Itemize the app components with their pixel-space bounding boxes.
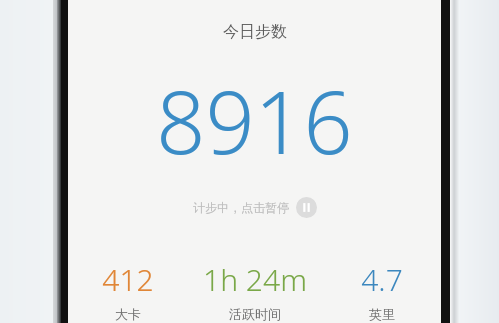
staticText: 412 bbox=[102, 259, 154, 300]
button[interactable]: Pause step counting bbox=[187, 195, 323, 220]
staticText: 活跃时间 bbox=[229, 306, 281, 321]
button[interactable]: Pause bbox=[296, 197, 317, 218]
button[interactable]: 412 bbox=[76, 257, 180, 323]
button[interactable]: 4.7 bbox=[330, 257, 433, 323]
staticText: 8916 bbox=[156, 62, 353, 179]
staticText: 计步中，点击暂停 bbox=[193, 200, 289, 215]
staticText: 今日步数 bbox=[223, 22, 287, 42]
staticText: 大卡 bbox=[115, 306, 141, 321]
staticText: 英里 bbox=[369, 306, 395, 321]
staticText: 1h 24m bbox=[203, 259, 307, 300]
button[interactable]: 1h 24m bbox=[180, 257, 330, 323]
staticText: 4.7 bbox=[361, 259, 403, 300]
